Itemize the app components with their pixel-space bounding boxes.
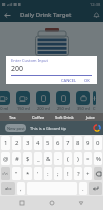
button[interactable]: 2	[12, 136, 21, 150]
staticText: -	[57, 155, 59, 163]
button[interactable]: 5	[44, 136, 52, 150]
staticText: Custom	[93, 106, 96, 114]
staticText: @	[3, 155, 9, 163]
button[interactable]: Tea	[0, 113, 25, 121]
button[interactable]: 8	[74, 136, 82, 150]
button[interactable]: @	[1, 152, 10, 165]
button[interactable]: Recents	[15, 196, 29, 210]
staticText: =\<	[2, 171, 9, 176]
staticText: =	[86, 155, 90, 163]
staticText: "	[15, 170, 18, 178]
button[interactable]: ?	[74, 167, 82, 180]
staticText: _	[37, 155, 40, 163]
staticText: 12:38	[90, 2, 101, 7]
staticText: New post	[7, 126, 25, 131]
staticText: +	[86, 170, 90, 178]
button[interactable]: 1	[1, 136, 10, 150]
staticText: 350 ml	[77, 106, 90, 111]
button[interactable]: (	[64, 152, 72, 165]
staticText: Soft Drink	[55, 115, 74, 120]
button[interactable]: 4	[34, 136, 42, 150]
button[interactable]: 150 ml	[13, 91, 33, 111]
staticText: $	[26, 155, 30, 163]
staticText: 3	[26, 139, 30, 147]
button[interactable]: _	[34, 152, 42, 165]
staticText: '	[37, 170, 39, 178]
button[interactable]: 6	[54, 136, 62, 150]
button[interactable]: Juice	[77, 113, 103, 121]
staticText: ,	[20, 185, 22, 193]
button[interactable]: ;	[54, 167, 62, 180]
button[interactable]: Backspace	[94, 167, 102, 180]
button[interactable]: Notifications	[89, 8, 103, 22]
button[interactable]: !	[64, 167, 72, 180]
staticText: Enter Custom Input	[11, 58, 48, 63]
staticText: abc	[5, 186, 12, 191]
button[interactable]: =	[84, 152, 92, 165]
staticText: !	[67, 170, 69, 178]
button[interactable]: :	[44, 167, 52, 180]
staticText: %	[96, 155, 101, 163]
button[interactable]: 200 ml	[33, 91, 53, 111]
button[interactable]: Back	[74, 196, 88, 210]
staticText: OK	[84, 78, 90, 83]
button[interactable]: '	[34, 167, 42, 180]
staticText: *	[26, 170, 30, 178]
button[interactable]: 0	[94, 136, 102, 150]
staticText: ?	[77, 170, 80, 178]
button[interactable]: OK	[82, 77, 92, 84]
button[interactable]: Enter	[89, 182, 102, 195]
staticText: Coffee	[32, 115, 45, 120]
button[interactable]: 250 ml	[53, 91, 73, 111]
button[interactable]: CANCEL	[59, 77, 79, 84]
button[interactable]: Google	[91, 122, 103, 134]
button[interactable]: New post	[5, 124, 26, 132]
button[interactable]: 9	[84, 136, 92, 150]
button[interactable]: 50 ml	[0, 91, 13, 111]
button[interactable]: -	[54, 152, 62, 165]
button[interactable]: 7	[64, 136, 72, 150]
button[interactable]: #	[12, 152, 21, 165]
staticText: )	[77, 155, 79, 163]
staticText: (	[67, 155, 69, 163]
button[interactable]: )	[74, 152, 82, 165]
button[interactable]: .	[79, 182, 87, 195]
button[interactable]: %	[94, 152, 102, 165]
button[interactable]: &	[44, 152, 52, 165]
button[interactable]: $	[23, 152, 32, 165]
staticText: Daily Drink Target	[20, 11, 72, 19]
staticText: 1	[4, 139, 8, 147]
button[interactable]: =\<	[1, 167, 10, 180]
button[interactable]: "	[12, 167, 21, 180]
button[interactable]: Soft Drink	[51, 113, 77, 121]
staticText: 5	[46, 139, 50, 147]
staticText: ;	[57, 170, 59, 178]
button[interactable]: Coffee	[25, 113, 51, 121]
staticText: 4	[36, 139, 40, 147]
button[interactable]: Home	[45, 196, 59, 210]
staticText: 200	[11, 64, 24, 74]
staticText: Juice	[86, 115, 95, 120]
button[interactable]: 3	[23, 136, 32, 150]
staticText: CANCEL	[61, 78, 77, 83]
staticText: 200 ml	[37, 106, 50, 111]
button[interactable]: +	[84, 167, 92, 180]
staticText: &	[46, 155, 51, 163]
staticText: 8	[76, 139, 80, 147]
button[interactable]: ,	[17, 182, 25, 195]
staticText: Tea	[9, 115, 16, 120]
staticText: :	[47, 170, 49, 178]
staticText: This is a Gboard tip	[30, 126, 66, 131]
button[interactable]: Back	[0, 8, 14, 22]
staticText: 9	[86, 139, 90, 147]
staticText: .	[82, 185, 84, 193]
staticText: 7	[66, 139, 70, 147]
staticText: 6	[56, 139, 60, 147]
staticText: 150 ml	[17, 106, 30, 111]
button[interactable]: *	[23, 167, 32, 180]
button[interactable]: 350 ml	[73, 91, 93, 111]
button[interactable]: Custom	[93, 91, 96, 114]
staticText: #	[15, 155, 19, 163]
button[interactable]: abc	[1, 182, 15, 195]
